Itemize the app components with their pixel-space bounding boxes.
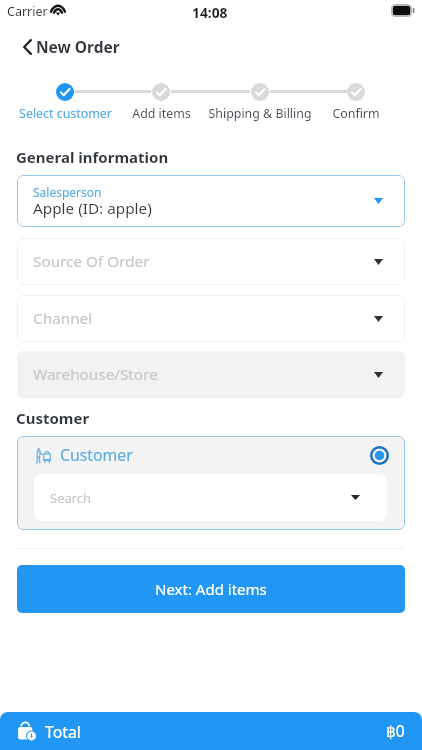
button[interactable]: Salesperson xyxy=(17,175,405,227)
button[interactable]: Customer xyxy=(17,436,405,474)
button[interactable]: Source Of Order xyxy=(17,238,405,285)
staticText: General information xyxy=(16,147,169,167)
staticText: Total xyxy=(45,721,81,743)
staticText: New Order xyxy=(36,36,120,57)
staticText: Next: Add items xyxy=(155,579,267,599)
button[interactable]: Total xyxy=(0,712,422,750)
button[interactable]: Search xyxy=(34,474,387,521)
staticText: Salesperson xyxy=(33,184,102,200)
staticText: Warehouse/Store xyxy=(33,364,158,385)
staticText: Confirm xyxy=(332,105,380,122)
staticText: ฿0 xyxy=(386,720,405,741)
staticText: Source Of Order xyxy=(33,251,150,272)
button[interactable]: Warehouse/Store xyxy=(17,351,405,398)
staticText: Select customer xyxy=(19,105,112,122)
staticText: Customer xyxy=(60,444,133,466)
staticText: Shipping & Billing xyxy=(208,105,312,122)
button[interactable]: Back xyxy=(13,33,41,61)
staticText: Apple (ID: apple) xyxy=(33,198,152,219)
staticText: Carrier xyxy=(7,3,48,20)
staticText: Add items xyxy=(132,105,191,122)
button[interactable]: Next: Add items xyxy=(17,565,405,613)
button[interactable]: Channel xyxy=(17,295,405,342)
staticText: Customer xyxy=(16,408,90,428)
staticText: Search xyxy=(50,489,92,507)
staticText: 14:08 xyxy=(192,3,228,22)
staticText: Channel xyxy=(33,308,93,329)
